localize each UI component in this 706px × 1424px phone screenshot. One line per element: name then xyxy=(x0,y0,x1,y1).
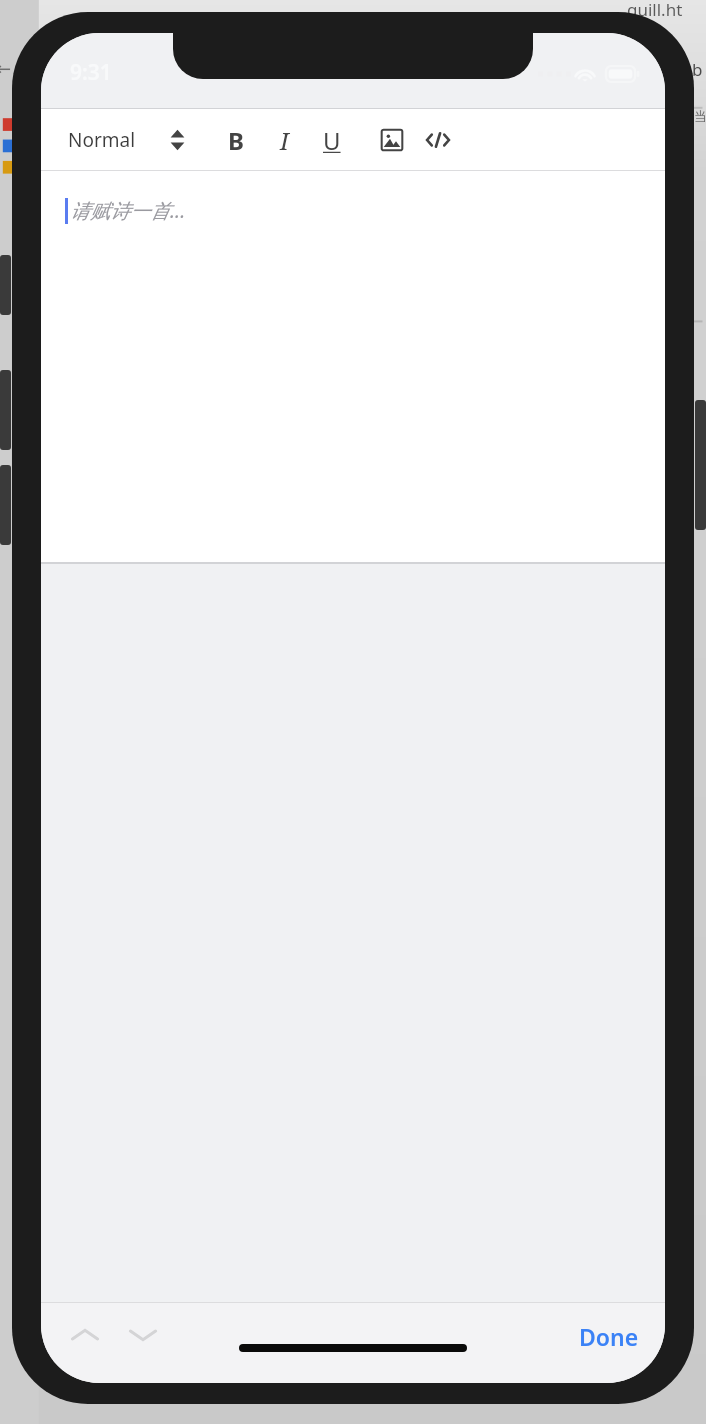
button[interactable]: Done xyxy=(567,1313,651,1360)
staticText: U xyxy=(323,124,341,157)
staticText: 当 xyxy=(694,108,706,124)
staticText: 请赋诗一首... xyxy=(70,197,186,224)
button[interactable]: Underline xyxy=(315,117,349,163)
staticText: Normal xyxy=(68,127,136,153)
staticText: b xyxy=(692,58,703,81)
button[interactable]: Previous field xyxy=(59,1309,111,1361)
button[interactable]: Bold xyxy=(219,117,253,163)
button[interactable]: Insert image xyxy=(375,117,409,163)
button[interactable]: Normal xyxy=(66,121,187,159)
staticText: B xyxy=(228,124,244,157)
button[interactable]: Italic xyxy=(267,117,301,163)
staticText: Done xyxy=(579,1321,639,1352)
button[interactable]: 请赋诗一首... xyxy=(41,171,665,564)
staticText: I xyxy=(280,124,289,157)
staticText: 9:31 xyxy=(70,58,112,87)
button[interactable]: Code block xyxy=(421,117,455,163)
button[interactable]: Next field xyxy=(117,1309,169,1361)
staticText: ← xyxy=(0,58,12,79)
staticText: quill.ht xyxy=(627,0,683,21)
